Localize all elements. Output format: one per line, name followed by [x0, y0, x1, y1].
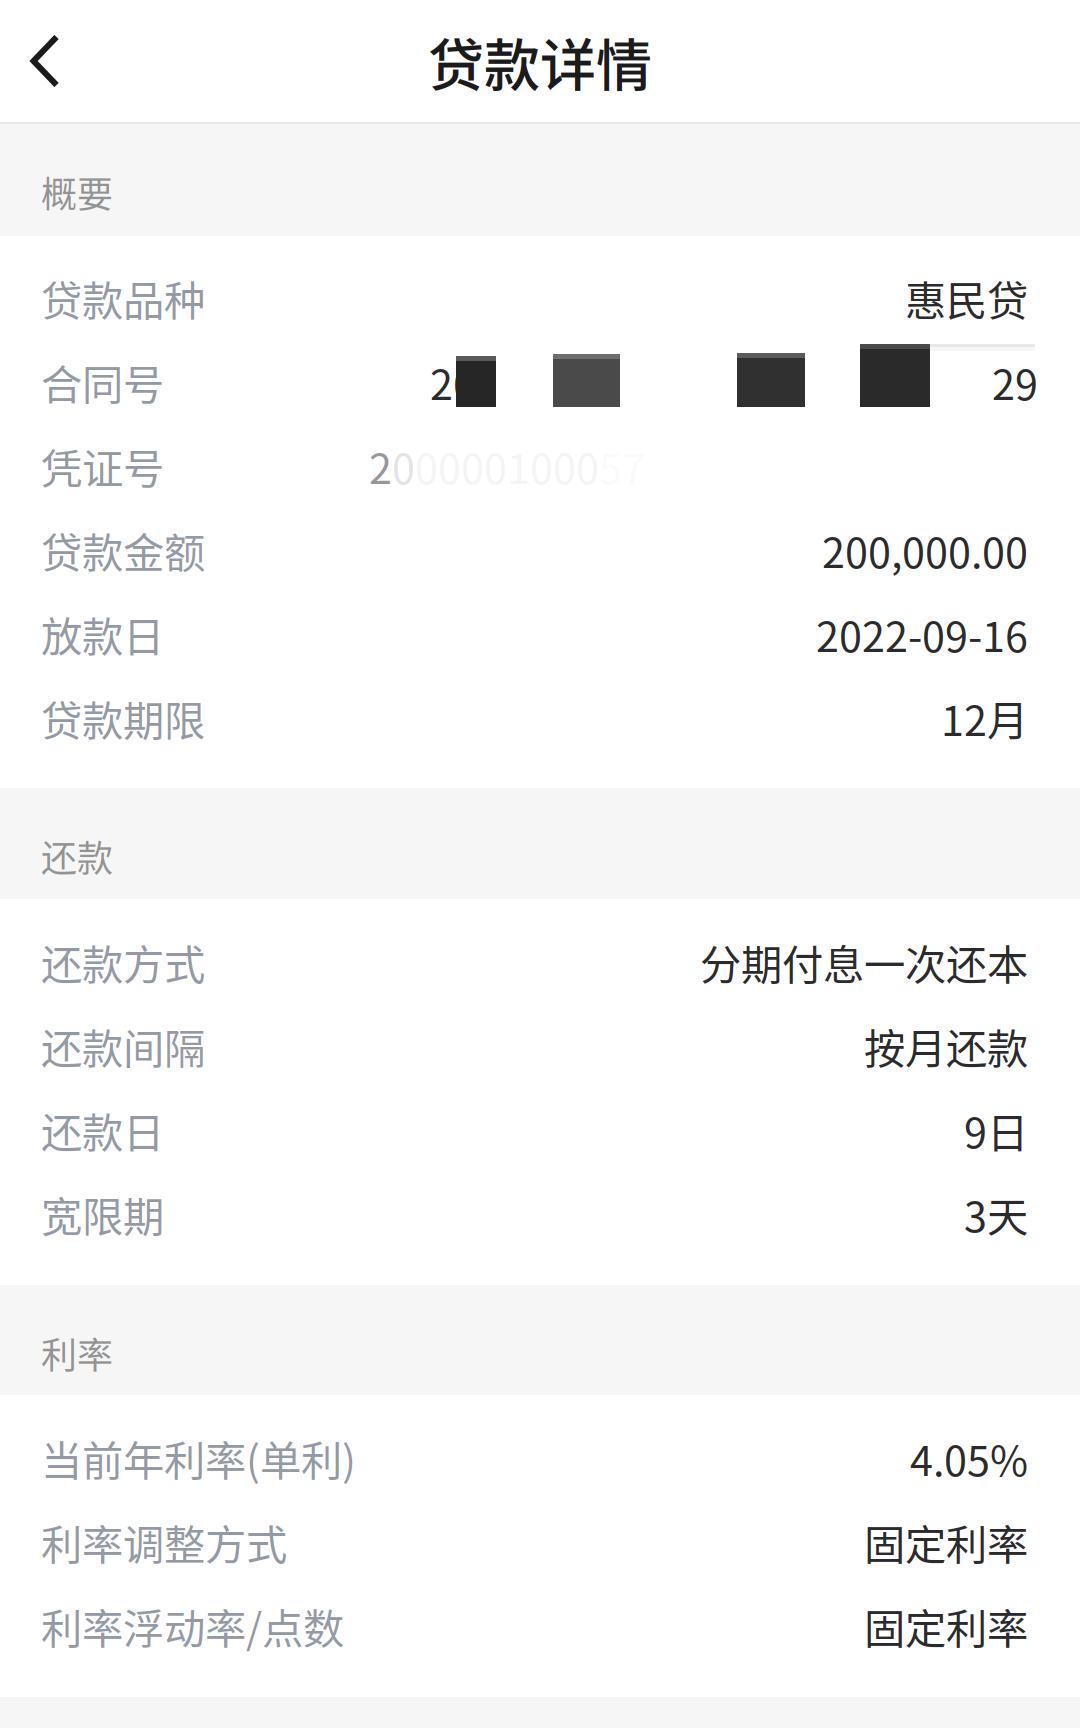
staticText: 分期付息一次还本 [700, 932, 1028, 992]
staticText: 还款间隔 [41, 1016, 205, 1076]
staticText: 固定利率 [864, 1596, 1028, 1656]
staticText: 利率 [41, 1327, 113, 1379]
staticText: 4.05% [910, 1428, 1028, 1488]
staticText: 200,000.00 [822, 520, 1028, 580]
staticText: 2022-09-16 [816, 604, 1028, 664]
staticText: 贷款详情 [428, 20, 652, 102]
staticText: 0 [392, 436, 415, 496]
staticText: 3天 [964, 1184, 1028, 1244]
staticText: 还款方式 [41, 932, 205, 992]
staticText: 利率调整方式 [41, 1512, 287, 1572]
button[interactable]: 返回 [0, 0, 90, 122]
staticText: 利率浮动率/点数 [41, 1596, 344, 1656]
staticText: 合同号 [41, 352, 164, 412]
staticText: 20 [430, 352, 476, 412]
staticText: 12月 [941, 688, 1028, 748]
staticText: 凭证号 [41, 436, 164, 496]
staticText: 00001000 [415, 436, 599, 496]
staticText: 贷款期限 [41, 688, 205, 748]
staticText: 惠民贷 [905, 268, 1028, 328]
staticText: 固定利率 [864, 1512, 1028, 1572]
staticText: 贷款品种 [41, 268, 205, 328]
staticText: 放款日 [41, 604, 164, 664]
staticText: 宽限期 [41, 1184, 164, 1244]
staticText: 按月还款 [864, 1016, 1028, 1076]
staticText: 贷款金额 [41, 520, 205, 580]
staticText: 概要 [41, 166, 113, 218]
staticText: 当前年利率(单利) [41, 1428, 356, 1488]
staticText: 还款 [41, 830, 113, 882]
staticText: 29 [992, 352, 1038, 412]
staticText: 2 [369, 436, 392, 496]
staticText: 9日 [964, 1100, 1028, 1160]
staticText: 还款日 [41, 1100, 164, 1160]
